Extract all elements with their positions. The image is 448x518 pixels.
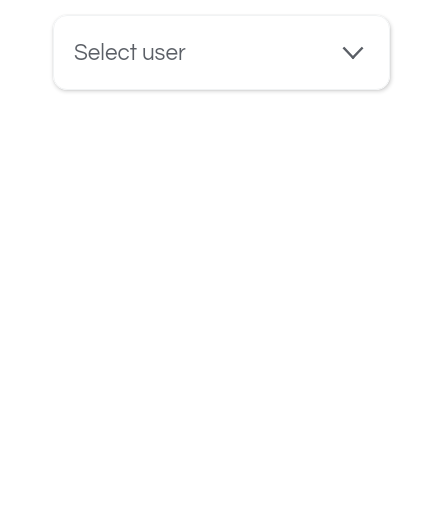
button[interactable]: Select user xyxy=(53,15,390,90)
other: Open user list xyxy=(343,47,363,59)
staticText: Select user xyxy=(74,42,186,65)
